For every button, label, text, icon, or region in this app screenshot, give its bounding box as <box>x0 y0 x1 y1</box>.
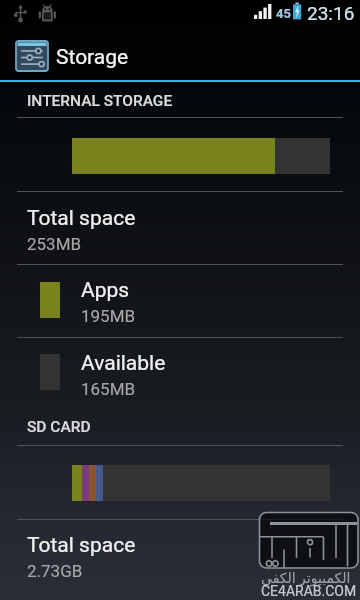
staticText: INTERNAL STORAGE <box>27 92 173 110</box>
staticText: 2.73GB <box>27 561 83 581</box>
staticText: Storage <box>56 45 129 70</box>
staticText: 253MB <box>27 234 82 254</box>
staticText: 23:16 <box>307 2 355 24</box>
staticText: 45 <box>276 6 291 21</box>
button[interactable]: Total space <box>0 192 360 264</box>
button[interactable]: Apps <box>0 265 360 337</box>
staticText: Total space <box>27 206 136 231</box>
staticText: Total space <box>27 533 136 558</box>
staticText: CE4ARAB.COM <box>261 583 357 599</box>
staticText: 165MB <box>81 379 136 399</box>
staticText: 195MB <box>81 306 136 326</box>
button[interactable]: Total space <box>0 520 360 592</box>
staticText: Apps <box>81 278 130 303</box>
button[interactable]: Available <box>0 338 360 409</box>
staticText: Available <box>81 351 166 376</box>
staticText: الكمبيوتر الكفي <box>261 570 351 586</box>
other: Settings <box>16 41 48 71</box>
button[interactable]: Settings <box>0 25 360 80</box>
staticText: SD CARD <box>27 418 91 436</box>
